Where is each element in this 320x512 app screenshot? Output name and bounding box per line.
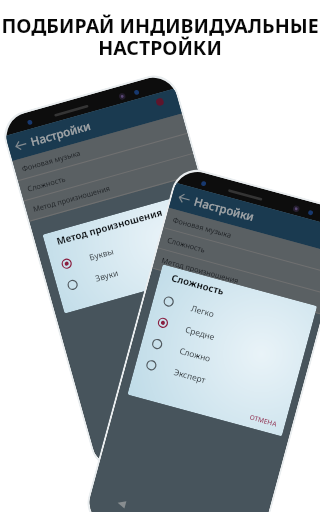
staticText: Настройки — [29, 118, 93, 150]
button[interactable]: Back — [12, 137, 29, 154]
button[interactable]: Легко — [151, 286, 311, 350]
staticText: Сложно — [178, 345, 212, 364]
staticText: Звуки — [94, 267, 120, 284]
staticText: Метод произношения — [161, 255, 240, 286]
button[interactable]: Буквы — [49, 213, 209, 278]
button[interactable]: Back — [175, 190, 192, 207]
staticText: Эксперт — [173, 366, 207, 385]
button[interactable]: Фоновая музыка — [12, 113, 187, 181]
staticText: Сложность — [26, 174, 66, 194]
staticText: Легко — [190, 302, 216, 319]
button[interactable]: Метод произношения — [24, 154, 199, 222]
button[interactable]: Сложно — [139, 329, 300, 392]
staticText: Сложность — [166, 235, 206, 255]
button[interactable]: Средне — [145, 308, 305, 371]
button[interactable]: Эксперт — [134, 350, 294, 413]
staticText: Метод произношения — [55, 205, 164, 248]
staticText: Сложность — [170, 271, 226, 298]
button[interactable]: Метод произношения — [152, 248, 320, 315]
button[interactable]: Звуки — [55, 235, 215, 299]
staticText: Фоновая музыка — [172, 214, 233, 240]
button[interactable]: Сложность — [18, 134, 193, 201]
button[interactable]: ОТМЕНА — [246, 410, 280, 431]
staticText: Метод произношения — [32, 183, 112, 214]
staticText: ОТМЕНА — [249, 412, 278, 428]
staticText: Фоновая музыка — [20, 147, 82, 173]
staticText: Настройки — [192, 194, 256, 225]
staticText: Буквы — [88, 245, 115, 263]
button[interactable]: Фоновая музыка — [163, 208, 320, 274]
staticText: Средне — [184, 324, 216, 342]
staticText: ПОДБИРАЙ ИНДИВИДУАЛЬНЫЕ НАСТРОЙКИ — [0, 12, 320, 61]
button[interactable]: Сложность — [158, 228, 320, 294]
